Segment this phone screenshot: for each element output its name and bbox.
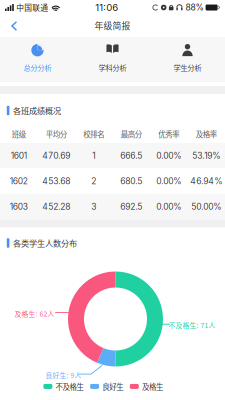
staticText: 53.19% bbox=[192, 151, 220, 161]
staticText: 及格生: 62人 bbox=[14, 308, 54, 318]
staticText: 1601 bbox=[11, 151, 27, 161]
staticText: 1602 bbox=[10, 176, 28, 186]
staticText: 最高分 bbox=[121, 129, 142, 139]
staticText: 校排名 bbox=[83, 129, 104, 139]
staticText: 良好生 bbox=[102, 381, 123, 392]
staticText: 88% bbox=[185, 2, 203, 13]
staticText: 不及格生: 71人 bbox=[168, 320, 215, 330]
staticText: 680.5 bbox=[120, 176, 142, 186]
button[interactable]: 学生分析 bbox=[150, 37, 225, 82]
staticText: 班级 bbox=[12, 129, 26, 139]
staticText: 良好生: 9人 bbox=[45, 370, 81, 380]
button[interactable]: 总分分析 bbox=[0, 37, 75, 82]
staticText: 中国联通 bbox=[16, 2, 48, 13]
staticText: 年级简报 bbox=[94, 19, 130, 32]
staticText: 453.68 bbox=[42, 176, 70, 186]
staticText: 总分分析 bbox=[23, 62, 51, 72]
staticText: 46.94% bbox=[190, 176, 222, 186]
staticText: 0.00% bbox=[156, 176, 181, 186]
staticText: 0.00% bbox=[156, 151, 181, 161]
staticText: 不及格生 bbox=[56, 381, 84, 392]
staticText: 各类学生人数分布 bbox=[13, 237, 77, 249]
staticText: 2 bbox=[91, 176, 96, 186]
staticText: 及格率 bbox=[196, 129, 217, 139]
staticText: 692.5 bbox=[120, 202, 142, 212]
staticText: 1603 bbox=[10, 202, 28, 212]
staticText: 452.28 bbox=[42, 202, 70, 212]
button[interactable]: 学科分析 bbox=[75, 37, 150, 82]
staticText: 3 bbox=[91, 202, 96, 212]
staticText: 666.5 bbox=[120, 151, 142, 161]
staticText: 50.00% bbox=[191, 202, 221, 212]
staticText: 11:06 bbox=[95, 2, 118, 13]
staticText: 及格生 bbox=[142, 381, 163, 392]
staticText: 470.69 bbox=[42, 151, 70, 161]
staticText: 学生分析 bbox=[173, 62, 201, 72]
button[interactable]: Back bbox=[0, 16, 25, 36]
staticText: 各班成绩概况 bbox=[13, 105, 61, 116]
staticText: 平均分 bbox=[46, 129, 67, 139]
staticText: 优秀率 bbox=[158, 129, 179, 139]
staticText: 学科分析 bbox=[98, 62, 126, 72]
staticText: 0.00% bbox=[156, 202, 181, 212]
staticText: 1 bbox=[92, 151, 95, 161]
